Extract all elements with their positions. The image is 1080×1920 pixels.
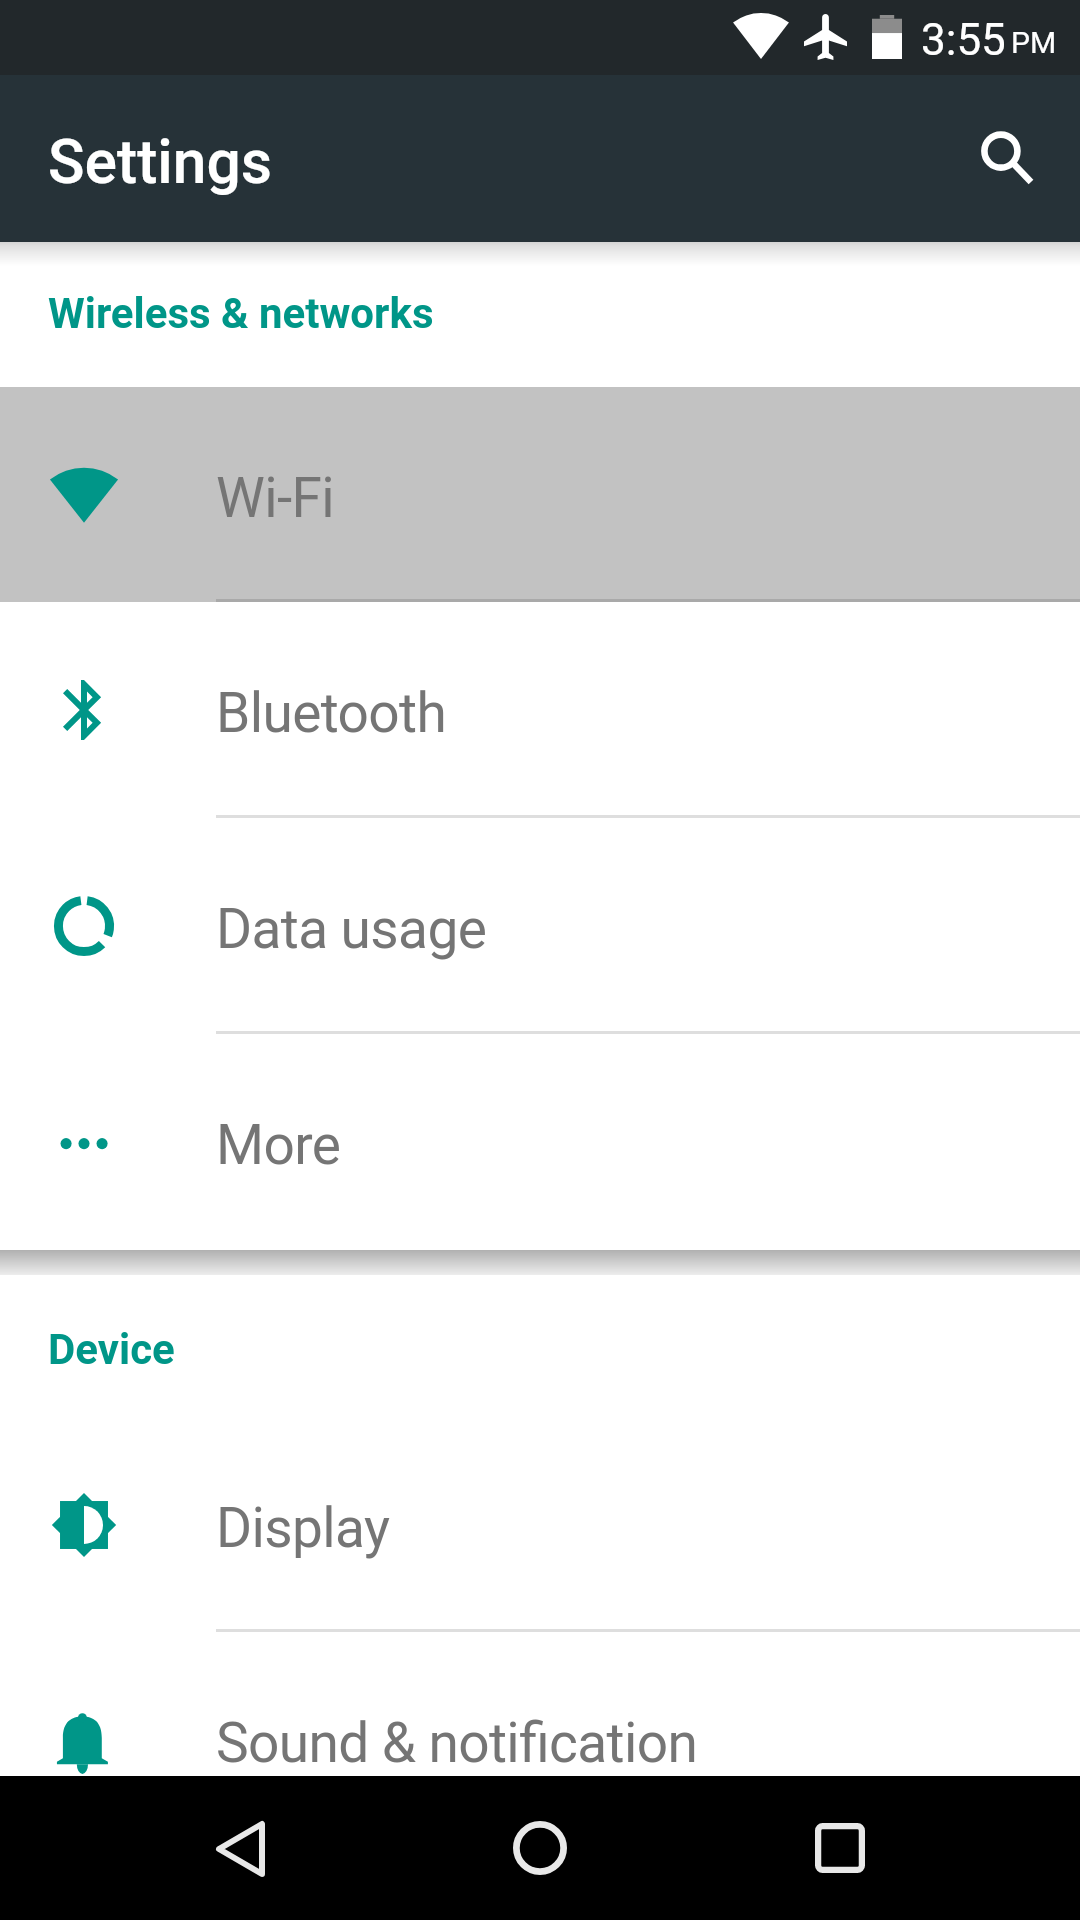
staticText: Settings bbox=[48, 127, 272, 198]
button[interactable]: More bbox=[0, 1034, 1080, 1250]
staticText: 3:55 bbox=[921, 14, 1006, 66]
staticText: Wi-Fi bbox=[216, 466, 335, 530]
staticText: Device bbox=[48, 1325, 175, 1374]
button[interactable]: Wi-Fi bbox=[0, 387, 1080, 602]
button[interactable]: Sound & notification bbox=[0, 1632, 1080, 1776]
button[interactable]: Bluetooth bbox=[0, 602, 1080, 818]
staticText: Wireless & networks bbox=[48, 289, 434, 338]
staticText: PM bbox=[1011, 25, 1057, 60]
button[interactable]: Back bbox=[180, 1776, 300, 1920]
staticText: Data usage bbox=[216, 897, 487, 961]
staticText: Sound & notification bbox=[216, 1711, 698, 1775]
staticText: More bbox=[216, 1113, 341, 1177]
staticText: Display bbox=[216, 1496, 390, 1560]
button[interactable]: Data usage bbox=[0, 818, 1080, 1034]
button[interactable]: Display bbox=[0, 1417, 1080, 1632]
button[interactable]: Recents bbox=[780, 1776, 900, 1920]
button[interactable]: Search bbox=[928, 75, 1080, 242]
staticText: Bluetooth bbox=[216, 681, 447, 745]
button[interactable]: Home bbox=[480, 1776, 600, 1920]
